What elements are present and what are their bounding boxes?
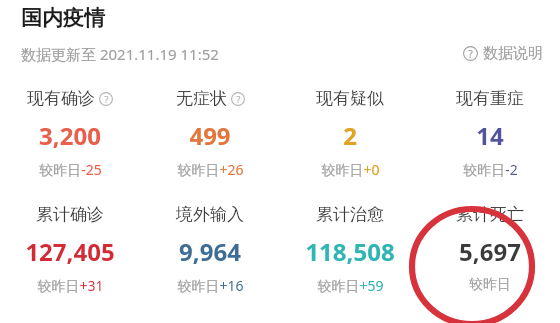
staticText: 较昨日: [469, 276, 511, 294]
button[interactable]: 现有重症: [420, 88, 560, 179]
staticText: 118,508: [305, 235, 395, 268]
staticText: 较昨日+59: [317, 276, 384, 295]
button[interactable]: 累计治愈: [280, 204, 420, 295]
staticText: 较昨日+26: [177, 160, 244, 179]
staticText: 较昨日-2: [463, 160, 518, 179]
staticText: 无症状: [176, 88, 227, 109]
staticText: 较昨日-25: [39, 160, 102, 179]
staticText: 国内疫情: [21, 5, 105, 31]
staticText: 较昨日+0: [321, 160, 380, 179]
other: Help: [99, 92, 113, 106]
staticText: 2: [343, 119, 357, 152]
staticText: 现有重症: [456, 88, 524, 109]
other: Help: [463, 46, 478, 61]
staticText: 较昨日+16: [177, 276, 244, 295]
staticText: 5,697: [459, 235, 521, 268]
staticText: ?: [236, 93, 241, 106]
staticText: 累计确诊: [36, 204, 104, 225]
other: Help: [231, 92, 245, 106]
staticText: 数据更新至 2021.11.19 11:52: [21, 44, 219, 64]
staticText: 现有疑似: [316, 88, 384, 109]
button[interactable]: 现有确诊: [0, 88, 140, 179]
staticText: 499: [189, 119, 231, 152]
staticText: ?: [468, 47, 473, 61]
staticText: 累计治愈: [316, 204, 384, 225]
button[interactable]: 境外输入: [140, 204, 280, 295]
staticText: 较昨日+31: [37, 276, 104, 295]
button[interactable]: 累计死亡: [420, 204, 560, 294]
button[interactable]: Help: [463, 40, 543, 67]
staticText: 境外输入: [176, 204, 244, 225]
staticText: 累计死亡: [456, 204, 524, 225]
button[interactable]: 现有疑似: [280, 88, 420, 179]
staticText: ?: [104, 93, 109, 106]
staticText: 现有确诊: [27, 88, 95, 109]
button[interactable]: 累计确诊: [0, 204, 140, 295]
button[interactable]: 无症状: [140, 88, 280, 179]
staticText: 127,405: [25, 235, 115, 268]
staticText: 9,964: [179, 235, 241, 268]
staticText: 14: [476, 119, 504, 152]
staticText: 数据说明: [483, 44, 543, 63]
staticText: 3,200: [39, 119, 101, 152]
